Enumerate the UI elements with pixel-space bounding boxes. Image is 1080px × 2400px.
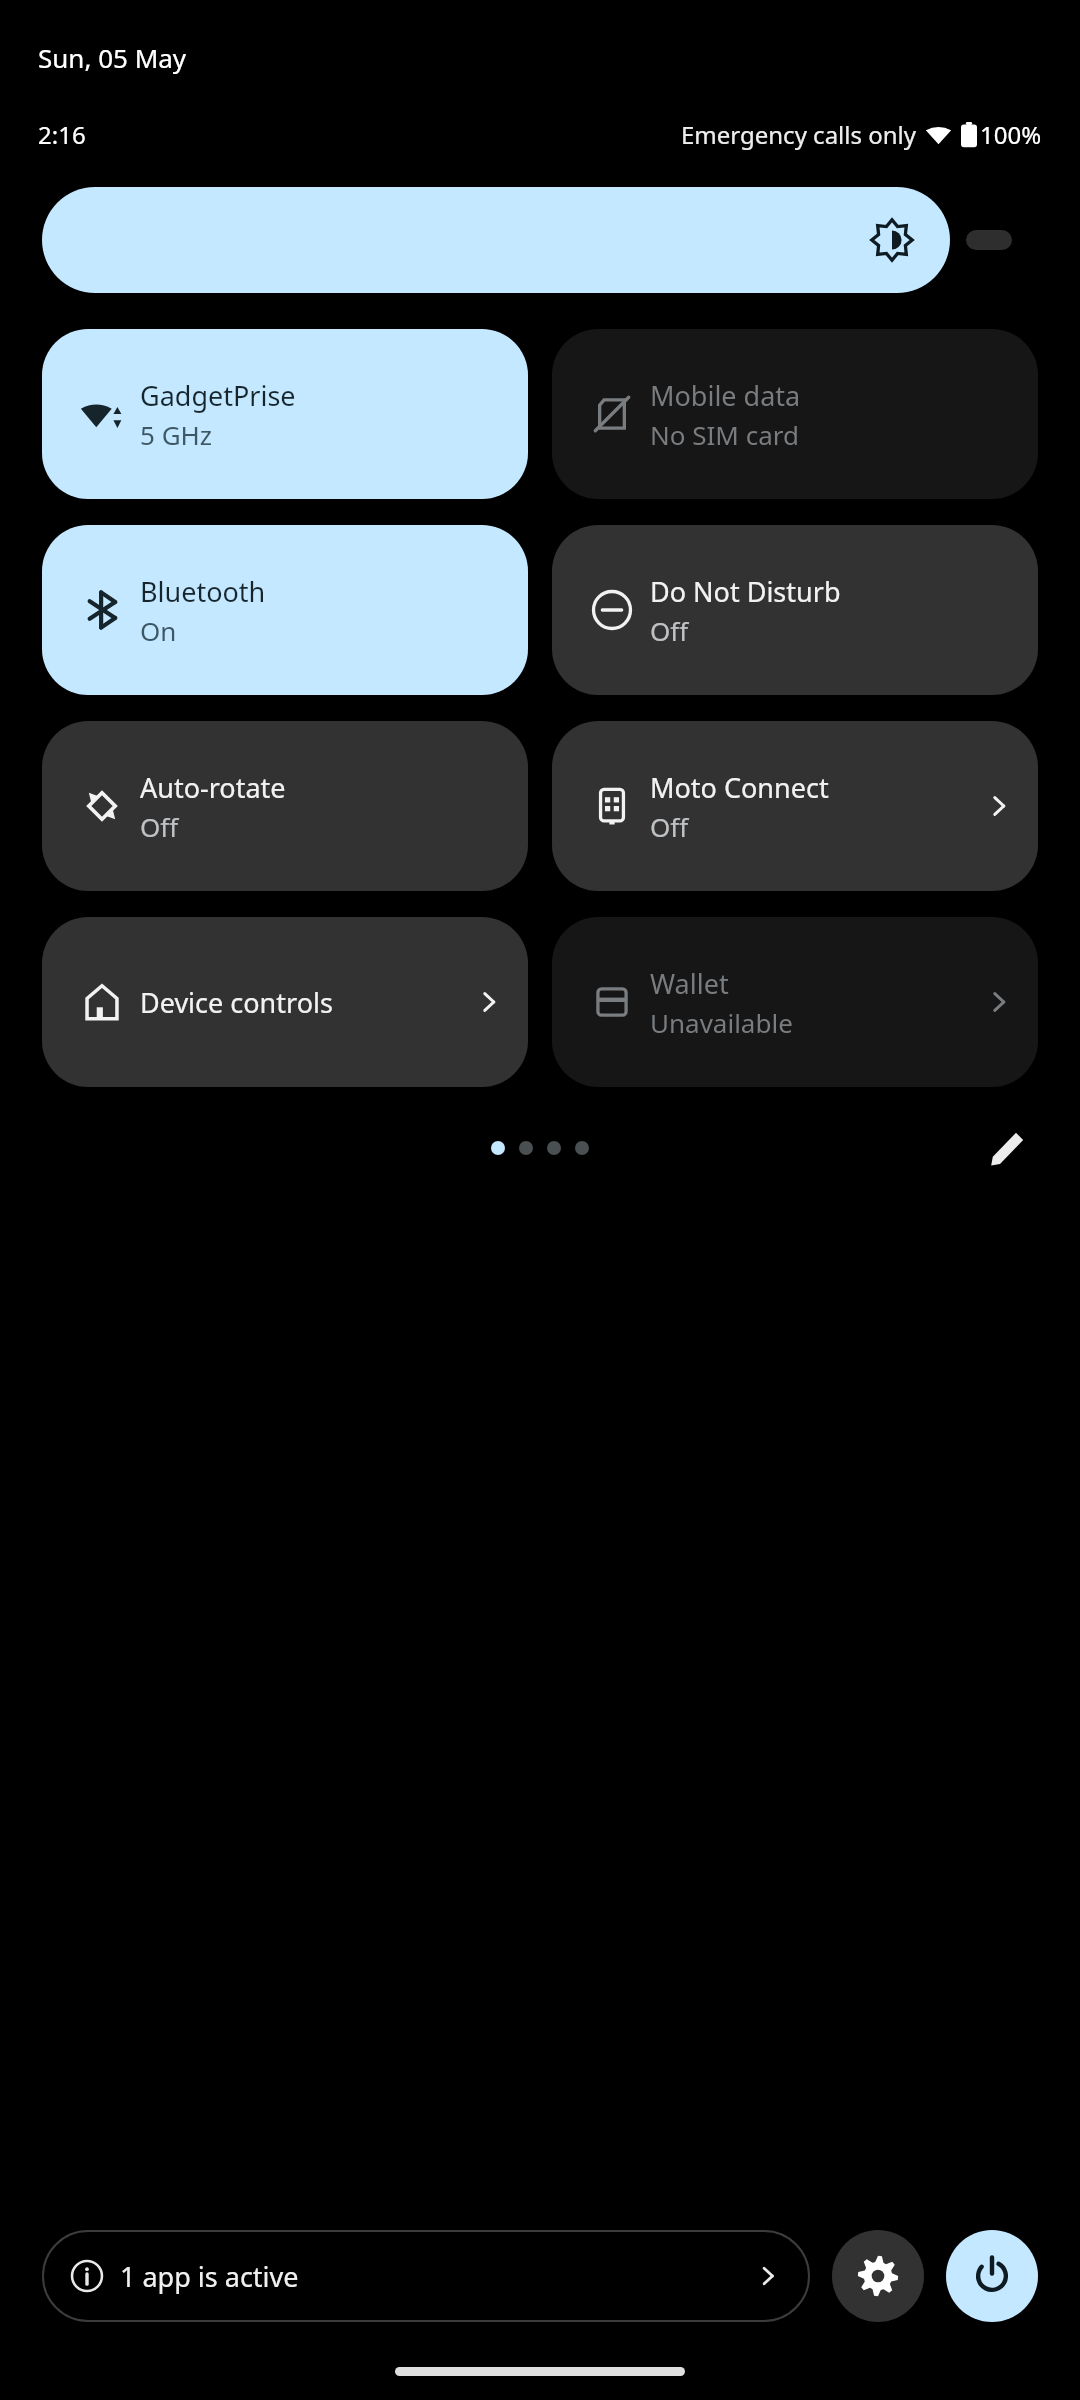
button[interactable]: Device controls: [42, 917, 528, 1087]
button[interactable]: Auto-rotate: [42, 721, 528, 891]
button[interactable]: Edit tiles: [978, 1118, 1038, 1178]
staticText: Off: [650, 613, 689, 648]
button[interactable]: Do Not Disturb: [552, 525, 1038, 695]
staticText: Bluetooth: [140, 573, 266, 610]
staticText: 100%: [980, 118, 1042, 151]
button[interactable]: Wallet: [552, 917, 1038, 1087]
button[interactable]: Moto Connect: [552, 721, 1038, 891]
staticText: 1 app is active: [120, 2258, 299, 2295]
button[interactable]: Brightness: [42, 187, 950, 293]
staticText: Off: [650, 809, 689, 844]
staticText: GadgetPrise: [140, 377, 296, 414]
button[interactable]: Bluetooth: [42, 525, 528, 695]
button[interactable]: Mobile data: [552, 329, 1038, 499]
staticText: On: [140, 613, 177, 648]
staticText: 5 GHz: [140, 417, 213, 452]
button[interactable]: Power: [946, 2230, 1038, 2322]
staticText: Moto Connect: [650, 769, 829, 806]
button[interactable]: 1 app is active: [42, 2230, 810, 2322]
staticText: No SIM card: [650, 417, 799, 452]
staticText: Mobile data: [650, 377, 801, 414]
staticText: Auto-rotate: [140, 769, 286, 806]
staticText: Sun, 05 May: [38, 40, 187, 75]
staticText: Unavailable: [650, 1005, 793, 1040]
staticText: Device controls: [140, 984, 333, 1021]
staticText: Off: [140, 809, 179, 844]
staticText: 2:16: [38, 118, 86, 151]
staticText: Do Not Disturb: [650, 573, 841, 610]
staticText: Emergency calls only: [681, 118, 917, 151]
button[interactable]: GadgetPrise: [42, 329, 528, 499]
button[interactable]: Settings: [832, 2230, 924, 2322]
staticText: Wallet: [650, 965, 729, 1002]
